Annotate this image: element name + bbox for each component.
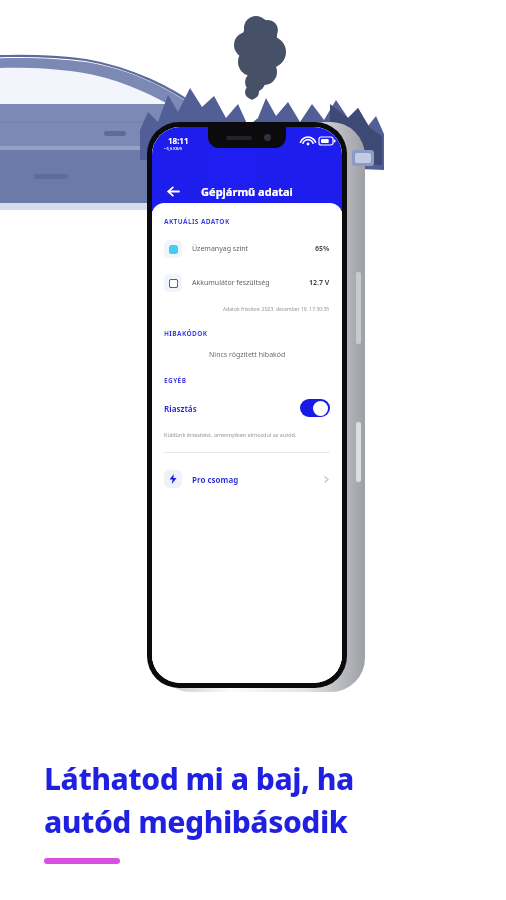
- staticText: Akkumulátor feszültség: [192, 278, 270, 288]
- staticText: Gépjármű adatai: [201, 184, 293, 199]
- button[interactable]: Riasztás: [164, 393, 330, 423]
- staticText: Láthatod mi a baj, ha: [44, 758, 354, 799]
- staticText: autód meghibásodik: [44, 801, 348, 842]
- button[interactable]: Pro csomag: [164, 465, 330, 493]
- staticText: 18:11: [168, 135, 189, 146]
- staticText: Adatok frissítve: 2023. december 19. 17:…: [223, 306, 330, 313]
- staticText: Nincs rögzített hibakód: [209, 350, 286, 360]
- staticText: 12.7 V: [309, 278, 330, 288]
- button[interactable]: Üzemanyag szint: [164, 236, 330, 262]
- staticText: Pro csomag: [192, 474, 239, 485]
- staticText: Küldünk értesítést, amennyiben elmozdul …: [164, 431, 297, 438]
- staticText: 65%: [315, 244, 330, 254]
- button[interactable]: Akkumulátor feszültség: [164, 270, 330, 296]
- staticText: EGYÉB: [164, 376, 187, 385]
- button[interactable]: Vissza: [160, 178, 186, 204]
- staticText: HIBAKÓDOK: [164, 329, 208, 338]
- staticText: • 5,6 KB/S: [164, 146, 182, 151]
- staticText: Üzemanyag szint: [192, 244, 249, 254]
- staticText: AKTUÁLIS ADATOK: [164, 217, 230, 226]
- staticText: Riasztás: [164, 403, 197, 414]
